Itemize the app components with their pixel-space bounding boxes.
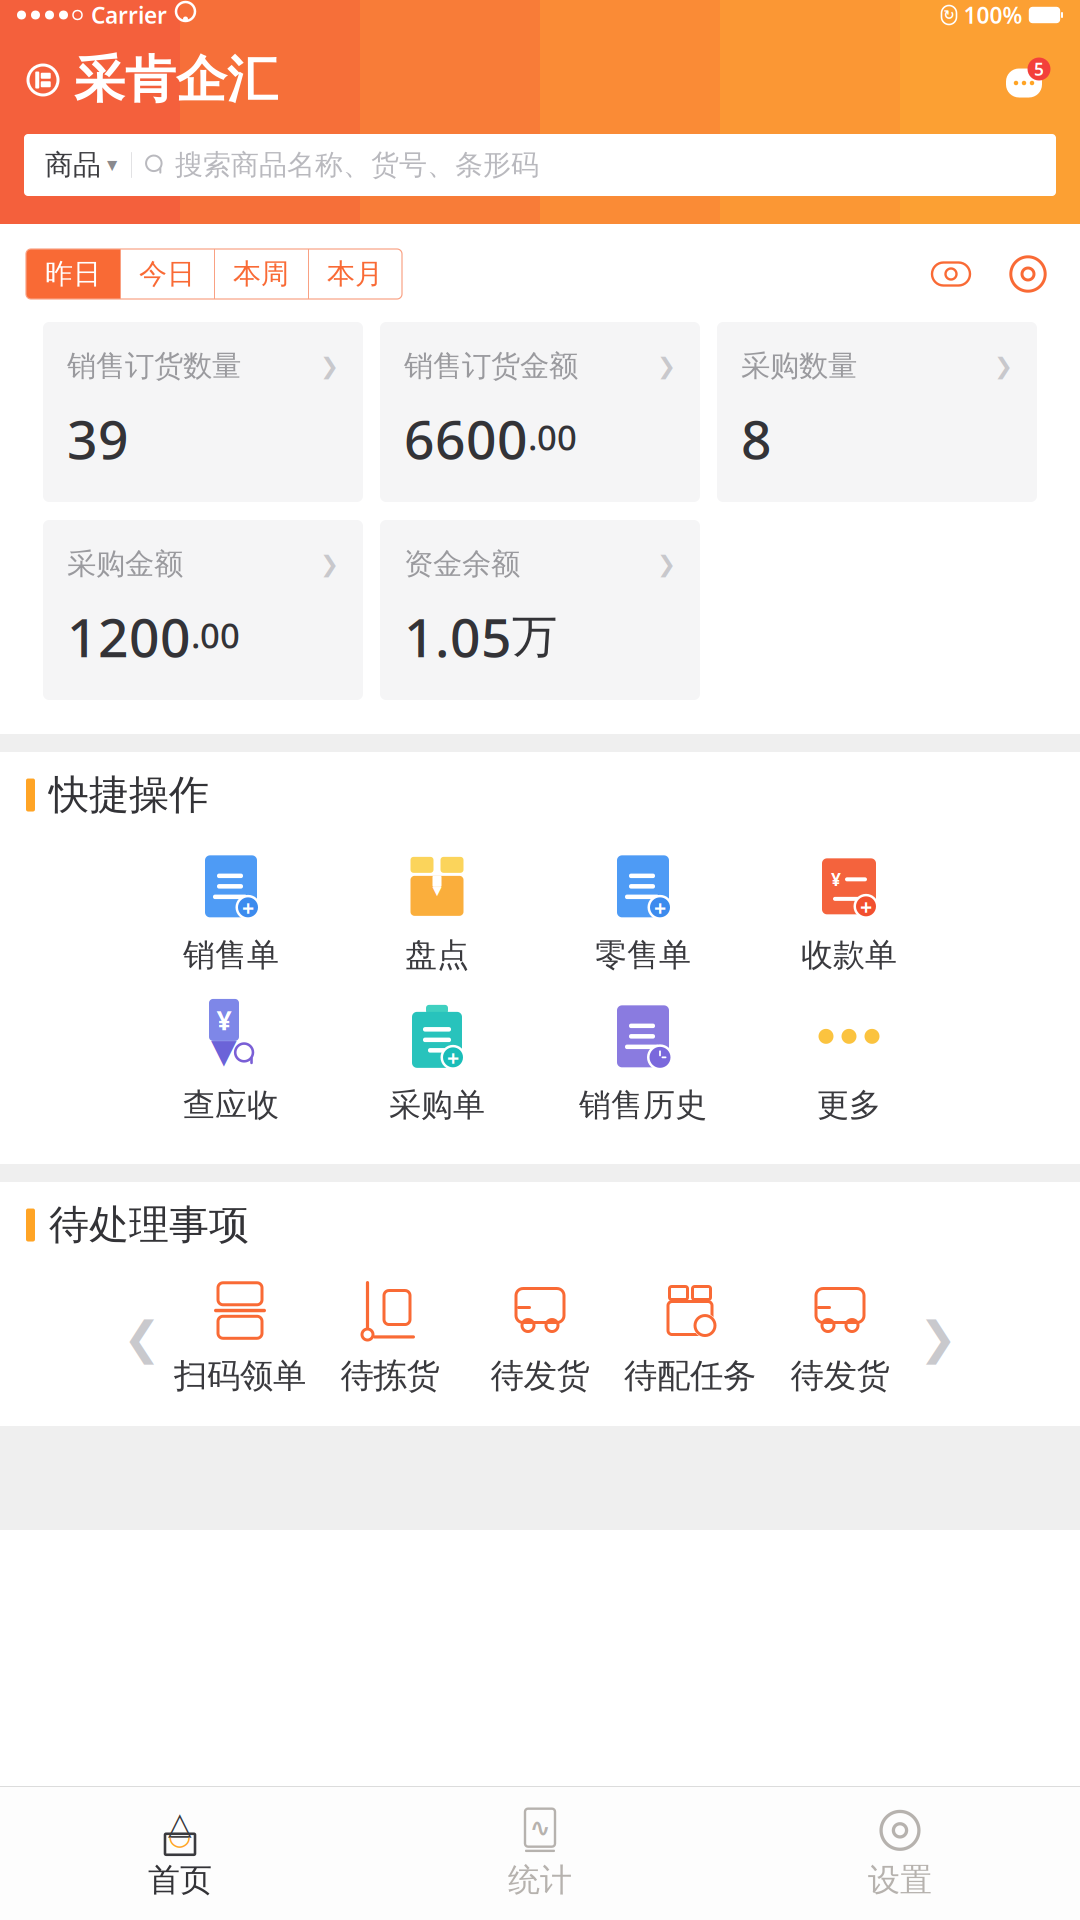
button[interactable]: 销售订货数量 [43,322,363,502]
staticText: ◡ [169,1820,190,1850]
staticText: 1200 [67,601,191,672]
staticText: + [242,893,254,921]
button[interactable]: 待配任务 [615,1268,765,1408]
staticText: 商品 [45,148,101,182]
button[interactable]: 设置 [720,1786,1080,1920]
staticText: 待配任务 [624,1355,756,1396]
staticText: 销售订货数量 [67,348,241,384]
staticText: 更多 [817,1085,881,1125]
button[interactable]: 采购数量 [717,322,1037,502]
staticText: 今日 [139,257,195,291]
staticText: 采购数量 [741,348,857,384]
button[interactable]: 资金余额 [380,520,700,700]
button[interactable]: ⌂ [0,1786,360,1920]
staticText: ❮ [123,1312,161,1364]
staticText: + [860,892,872,920]
button[interactable]: ¥ [128,988,334,1138]
button[interactable]: 采购金额 [43,520,363,700]
staticText: 采购金额 [67,546,183,582]
staticText: ❯ [994,353,1013,379]
staticText: △ [168,1806,192,1841]
staticText: 8 [741,403,772,474]
button[interactable]: 待发货 [765,1268,915,1408]
staticText: 本月 [327,257,383,291]
staticText: 5 [1034,57,1044,80]
button[interactable]: 本周 [214,249,308,299]
staticText: 收款单 [801,935,897,975]
staticText: 39 [67,403,129,474]
staticText: ▼ [432,884,441,897]
staticText: 扫码领单 [174,1355,306,1396]
button[interactable]: 销售订货金额 [380,322,700,502]
staticText: ❯ [320,353,339,379]
staticText: 待发货 [490,1355,589,1396]
staticText: 首页 [148,1860,212,1900]
staticText: 采购单 [389,1085,485,1125]
staticText: 6600 [404,403,528,474]
staticText: 查应收 [183,1085,279,1125]
button[interactable]: ¥ [746,838,952,988]
button[interactable]: + [540,838,746,988]
staticText: 待拣货 [340,1355,439,1396]
staticText: 万 [512,609,557,664]
staticText: 1.05 [404,601,512,672]
staticText: ❯ [657,353,676,379]
button[interactable]: 今日 [120,249,214,299]
staticText: ▼ [211,1032,237,1070]
button[interactable]: ∿ [360,1786,720,1920]
staticText: ¥ [216,1002,231,1038]
staticText: ∿ [529,1813,550,1842]
staticText: ¥ [831,868,841,891]
staticText: 待发货 [790,1355,889,1396]
staticText: .00 [191,612,240,658]
button[interactable]: Toggle visibility [928,251,974,297]
staticText: 设置 [868,1860,932,1900]
staticText: 昨日 [45,257,101,291]
button[interactable]: 待发货 [465,1268,615,1408]
staticText: 资金余额 [404,546,520,582]
button[interactable]: + [128,838,334,988]
staticText: ❯ [919,1312,957,1364]
button[interactable]: 待拣货 [315,1268,465,1408]
staticText: 零售单 [595,935,691,975]
staticText: 统计 [508,1860,572,1900]
staticText: 销售历史 [579,1085,707,1125]
staticText: ↻ [943,7,954,22]
button[interactable]: + [334,988,540,1138]
button[interactable]: Messages, 5 unread [998,55,1054,105]
button[interactable]: Next [915,1268,961,1408]
staticText: 销售单 [183,935,279,975]
button[interactable]: Settings [1002,248,1054,300]
button[interactable]: 更多 [746,988,952,1138]
button[interactable]: 采肯企汇 [26,49,278,111]
staticText: 快捷操作 [49,770,209,819]
staticText: Carrier [91,0,167,30]
staticText: ❯ [320,551,339,577]
button[interactable]: ▼ [334,838,540,988]
staticText: ❯ [657,551,676,577]
button[interactable]: Previous [119,1268,165,1408]
staticText: 搜索商品名称、货号、条形码 [175,148,539,182]
button[interactable]: 销售历史 [540,988,746,1138]
staticText: + [654,893,666,921]
staticText: 本周 [233,257,289,291]
staticText: .00 [528,414,577,460]
button[interactable]: 本月 [308,249,402,299]
staticText: + [447,1043,459,1071]
staticText: 100% [963,0,1022,30]
staticText: 盘点 [405,935,469,975]
button[interactable]: 扫码领单 [165,1268,315,1408]
staticText: 待处理事项 [49,1200,249,1249]
button[interactable]: 商品 [24,134,1056,196]
staticText: 采肯企汇 [74,49,278,111]
staticText: 销售订货金额 [404,348,578,384]
staticText: ▼ [107,157,117,172]
button[interactable]: 昨日 [26,249,120,299]
